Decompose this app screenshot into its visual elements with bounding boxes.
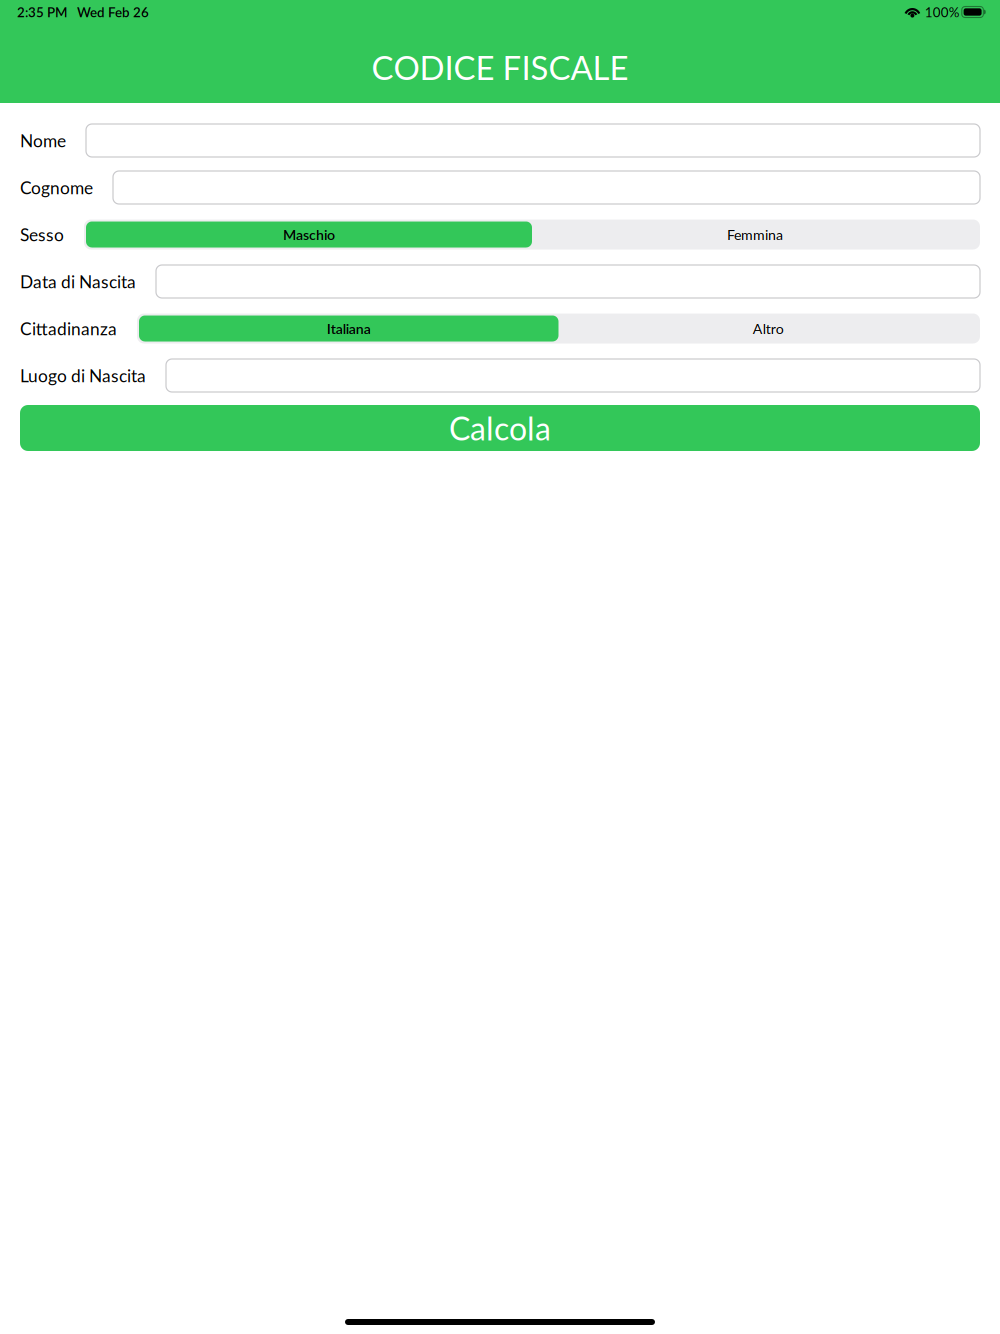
staticText: 2:35 PM [17,4,67,20]
button[interactable]: Femmina [532,221,978,247]
staticText: Cognome [20,177,93,198]
staticText: Data di Nascita [20,271,136,292]
staticText: 100% [925,4,960,20]
button[interactable]: Luogo di Nascita [166,359,980,392]
staticText: Sesso [20,224,64,245]
staticText: Femmina [727,226,783,243]
staticText: Luogo di Nascita [20,365,146,386]
button[interactable]: Cognome [113,171,980,204]
button[interactable]: Italiana [139,315,558,341]
button[interactable]: Maschio [86,221,532,247]
staticText: Cittadinanza [20,318,117,339]
staticText: Italiana [327,320,371,337]
button[interactable]: Data di Nascita [156,265,980,298]
staticText: Wed Feb 26 [77,4,149,20]
staticText: Maschio [283,226,335,243]
button[interactable]: Calcola [20,405,980,451]
button[interactable]: Nome [86,124,980,157]
staticText: Altro [753,320,784,337]
button[interactable]: Altro [558,315,978,341]
staticText: Nome [20,130,66,151]
staticText: Calcola [449,409,551,447]
staticText: CODICE FISCALE [371,47,628,87]
